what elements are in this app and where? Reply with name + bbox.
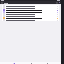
button[interactable]: Mail [12, 63, 16, 64]
button[interactable]: Meet [45, 63, 49, 64]
button[interactable] [2, 15, 59, 17]
button[interactable] [2, 9, 59, 11]
button[interactable]: Search [56, 2, 58, 4]
button[interactable] [2, 11, 59, 13]
button[interactable] [2, 7, 59, 9]
button[interactable] [2, 17, 59, 19]
button[interactable] [2, 13, 59, 15]
button[interactable] [2, 19, 59, 21]
staticText: Inbox [4, 2, 9, 4]
button[interactable]: Chat [29, 63, 33, 64]
button[interactable] [2, 5, 59, 7]
